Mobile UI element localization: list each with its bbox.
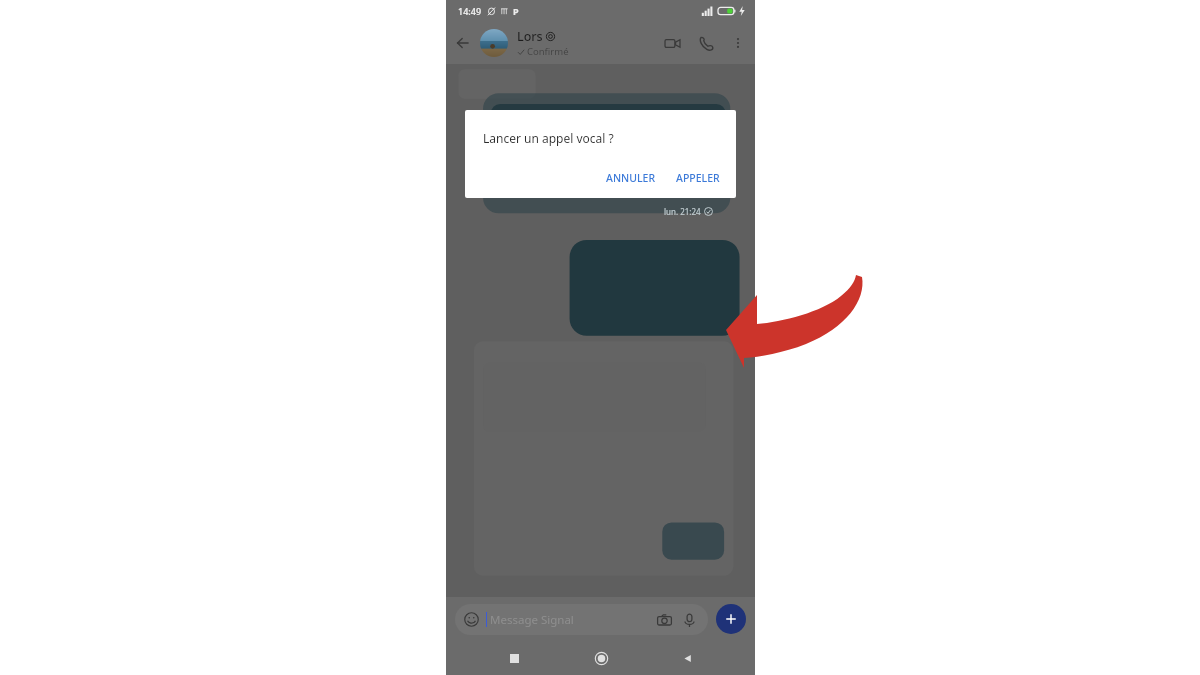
button[interactable]: Voice message [679,610,699,630]
button[interactable]: Video call [655,26,689,60]
button[interactable]: Camera [654,610,674,630]
staticText: lun. 21:24 [664,206,701,217]
staticText: Message Signal [490,612,574,628]
staticText: 14:49 [458,5,482,17]
button[interactable]: Back [669,641,705,675]
staticText: APPELER [676,171,720,185]
staticText: ANNULER [606,171,656,185]
button[interactable]: APPELER [666,164,730,192]
button[interactable]: Home [583,641,619,675]
staticText: Lors [517,28,543,45]
button[interactable]: Lors [480,22,655,64]
button[interactable]: Recent apps [496,641,532,675]
button[interactable]: Voice call [689,26,723,60]
button[interactable]: ANNULER [596,164,666,192]
staticText: Confirmé [527,45,569,58]
button[interactable]: Add attachment [716,604,746,634]
staticText: Lancer un appel vocal ? [483,130,614,146]
button[interactable]: More options [723,28,753,58]
button[interactable]: Message Signal [455,604,708,635]
button[interactable]: Back [446,26,480,60]
staticText: P [513,5,519,17]
